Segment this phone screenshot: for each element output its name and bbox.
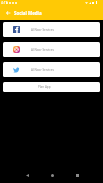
staticText: Al Noor Services xyxy=(31,68,54,72)
staticText: Plan App xyxy=(38,85,51,89)
button[interactable]: Al Noor Services xyxy=(3,22,100,37)
button[interactable]: Recents xyxy=(70,168,84,182)
button[interactable]: Plan App xyxy=(3,82,100,92)
staticText: Social Media xyxy=(14,10,42,16)
staticText: Al Noor Services xyxy=(31,28,54,32)
button[interactable]: Al Noor Services xyxy=(3,62,100,77)
button[interactable]: Home xyxy=(45,168,59,182)
staticText: Al Noor Services xyxy=(31,48,54,52)
button[interactable]: Back xyxy=(20,168,34,182)
button[interactable]: Al Noor Services xyxy=(3,42,100,57)
button[interactable]: Back xyxy=(2,7,13,18)
staticText: 4:17 xyxy=(1,1,8,5)
